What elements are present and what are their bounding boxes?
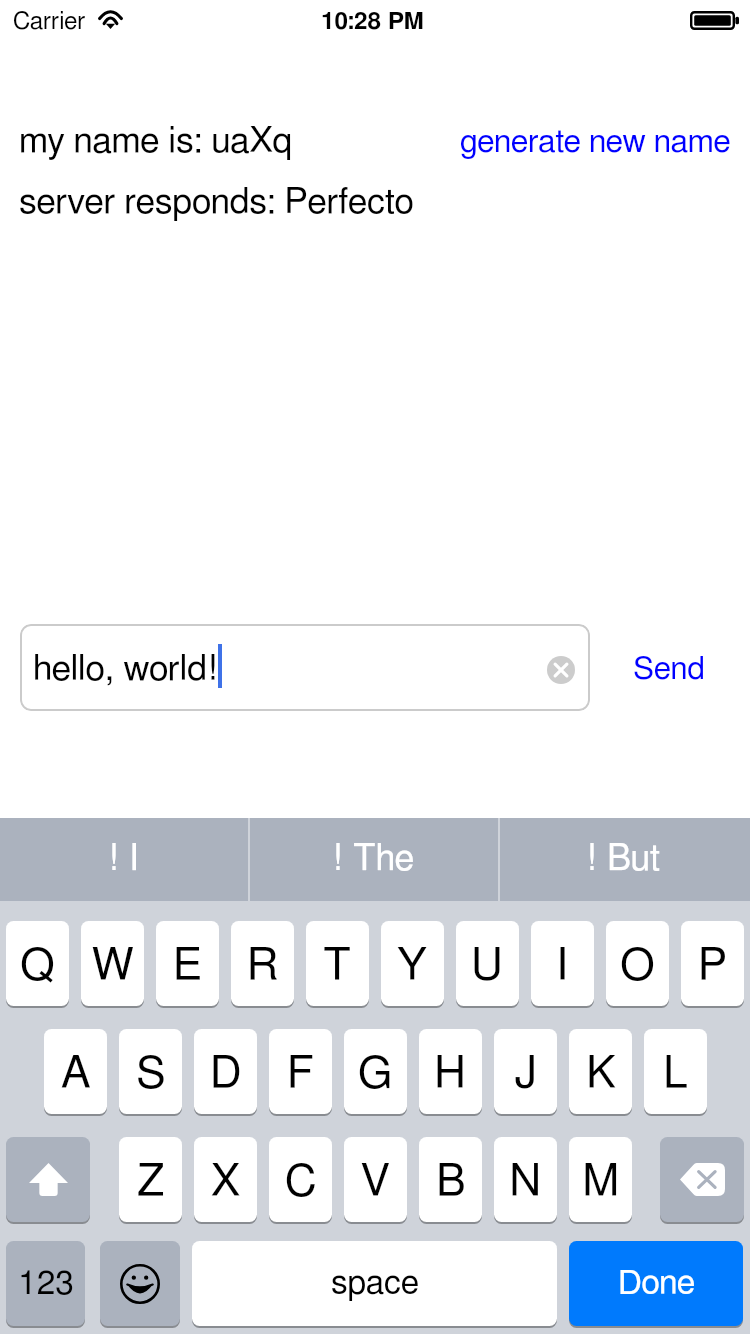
- staticText: ! The: [332, 841, 414, 877]
- staticText: H: [434, 1051, 467, 1096]
- button[interactable]: T: [306, 921, 369, 1008]
- button[interactable]: Send: [633, 654, 705, 686]
- staticText: D: [210, 1051, 242, 1096]
- button[interactable]: C: [269, 1137, 332, 1224]
- staticText: A: [61, 1051, 91, 1096]
- button[interactable]: Backspace: [660, 1137, 744, 1224]
- staticText: E: [173, 943, 202, 988]
- button[interactable]: Clear text: [547, 656, 575, 684]
- button[interactable]: Q: [6, 921, 69, 1008]
- staticText: J: [514, 1051, 538, 1096]
- button[interactable]: space: [192, 1241, 557, 1328]
- button[interactable]: V: [344, 1137, 407, 1224]
- button[interactable]: F: [269, 1029, 332, 1116]
- staticText: Done: [618, 1267, 695, 1301]
- button[interactable]: O: [606, 921, 669, 1008]
- staticText: I: [556, 943, 569, 988]
- button[interactable]: Y: [381, 921, 444, 1008]
- staticText: W: [92, 943, 134, 988]
- button[interactable]: Done: [569, 1241, 743, 1328]
- button[interactable]: Shift: [6, 1137, 90, 1224]
- staticText: generate new name: [460, 126, 731, 158]
- button[interactable]: A: [44, 1029, 107, 1116]
- button[interactable]: 123: [6, 1241, 85, 1328]
- staticText: F: [287, 1051, 314, 1096]
- button[interactable]: P: [681, 921, 744, 1008]
- staticText: U: [471, 943, 504, 988]
- button[interactable]: Emoji keyboard: [100, 1241, 180, 1328]
- staticText: M: [582, 1159, 620, 1204]
- staticText: Z: [137, 1159, 165, 1204]
- staticText: S: [136, 1051, 166, 1096]
- staticText: V: [361, 1159, 390, 1204]
- button[interactable]: hello, world!: [20, 624, 590, 711]
- button[interactable]: S: [119, 1029, 182, 1116]
- other: Wi-Fi signal: [98, 10, 123, 29]
- other: Battery full: [690, 11, 739, 30]
- button[interactable]: D: [194, 1029, 257, 1116]
- button[interactable]: L: [644, 1029, 707, 1116]
- staticText: P: [698, 943, 728, 988]
- staticText: C: [285, 1159, 317, 1204]
- button[interactable]: ! I: [0, 818, 250, 901]
- button[interactable]: ! But: [500, 818, 750, 901]
- staticText: B: [436, 1159, 466, 1204]
- button[interactable]: E: [156, 921, 219, 1008]
- staticText: 123: [18, 1267, 74, 1301]
- staticText: 10:28 PM: [321, 10, 425, 34]
- staticText: hello, world!: [33, 651, 219, 687]
- button[interactable]: J: [494, 1029, 557, 1116]
- staticText: my name is: uaXq: [19, 123, 293, 159]
- staticText: O: [620, 943, 655, 988]
- staticText: G: [358, 1051, 393, 1096]
- button[interactable]: X: [194, 1137, 257, 1224]
- staticText: ! I: [108, 841, 139, 877]
- staticText: server responds: Perfecto: [19, 184, 414, 220]
- button[interactable]: R: [231, 921, 294, 1008]
- staticText: N: [509, 1159, 542, 1204]
- button[interactable]: W: [81, 921, 144, 1008]
- button[interactable]: K: [569, 1029, 632, 1116]
- staticText: space: [331, 1267, 419, 1301]
- button[interactable]: Z: [119, 1137, 182, 1224]
- button[interactable]: G: [344, 1029, 407, 1116]
- staticText: ! But: [586, 841, 660, 877]
- button[interactable]: H: [419, 1029, 482, 1116]
- button[interactable]: U: [456, 921, 519, 1008]
- button[interactable]: generate new name: [460, 126, 731, 158]
- button[interactable]: ! The: [250, 818, 500, 901]
- staticText: R: [247, 943, 279, 988]
- staticText: L: [663, 1051, 689, 1096]
- button[interactable]: N: [494, 1137, 557, 1224]
- staticText: Send: [633, 654, 705, 686]
- button[interactable]: B: [419, 1137, 482, 1224]
- button[interactable]: I: [531, 921, 594, 1008]
- staticText: T: [323, 943, 352, 988]
- staticText: Q: [20, 943, 55, 988]
- staticText: K: [586, 1051, 616, 1096]
- staticText: X: [211, 1159, 241, 1204]
- staticText: Y: [397, 943, 428, 988]
- staticText: Carrier: [13, 10, 86, 34]
- button[interactable]: M: [569, 1137, 632, 1224]
